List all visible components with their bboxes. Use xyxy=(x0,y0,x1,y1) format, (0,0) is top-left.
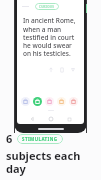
staticText: In ancient Rome, when a man testified in… xyxy=(23,16,76,58)
button[interactable]: Recent apps xyxy=(65,115,73,123)
staticText: 6 xyxy=(6,131,13,146)
button[interactable]: STIMULATING xyxy=(17,134,63,144)
button[interactable]: Category one xyxy=(21,97,30,106)
button[interactable]: Category five xyxy=(69,97,78,106)
staticText: subjects each day xyxy=(6,148,97,176)
button[interactable]: Share xyxy=(48,67,54,73)
button[interactable]: Category three xyxy=(45,97,54,106)
staticText: STIMULATING xyxy=(22,136,58,142)
button[interactable]: Category four xyxy=(57,97,66,106)
staticText: CURIOUS xyxy=(39,5,55,9)
button[interactable]: Home xyxy=(47,115,55,123)
button[interactable]: CURIOUS xyxy=(35,3,59,10)
button[interactable]: Bookmark xyxy=(59,67,65,73)
button[interactable]: Category two, selected xyxy=(33,97,42,106)
button[interactable]: Like xyxy=(70,67,76,73)
button[interactable]: Back xyxy=(28,115,36,123)
